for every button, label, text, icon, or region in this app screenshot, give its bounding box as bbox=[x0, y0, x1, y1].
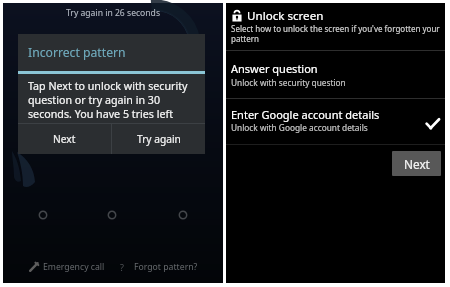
staticText: Unlock with security question bbox=[231, 77, 346, 88]
staticText: Incorrect pattern bbox=[28, 44, 126, 61]
button[interactable]: Emergency call bbox=[28, 261, 105, 273]
other: Emergency call bbox=[28, 261, 40, 273]
staticText: Emergency call bbox=[43, 261, 105, 273]
button[interactable]: Next bbox=[18, 124, 111, 154]
staticText: Tap Next to unlock with security questio… bbox=[28, 79, 194, 121]
staticText: Unlock screen bbox=[247, 8, 324, 24]
button[interactable]: ? bbox=[120, 261, 198, 273]
button[interactable]: Next bbox=[392, 151, 441, 176]
staticText: Answer question bbox=[231, 61, 318, 76]
button[interactable]: Answer question bbox=[226, 51, 445, 98]
staticText: Select how to unlock the screen if you'v… bbox=[231, 23, 445, 44]
staticText: Next bbox=[404, 156, 430, 172]
staticText: Unlock with Google account details bbox=[231, 122, 368, 133]
button[interactable]: Enter Google account details bbox=[226, 99, 445, 144]
staticText: ? bbox=[120, 261, 124, 273]
staticText: Forgot pattern? bbox=[134, 261, 198, 273]
button[interactable]: Try again bbox=[112, 124, 205, 154]
staticText: Try again bbox=[137, 132, 181, 146]
other: Selected bbox=[425, 116, 441, 132]
staticText: Next bbox=[53, 132, 76, 146]
staticText: Enter Google account details bbox=[231, 107, 380, 122]
staticText: Try again in 26 seconds bbox=[3, 7, 223, 19]
